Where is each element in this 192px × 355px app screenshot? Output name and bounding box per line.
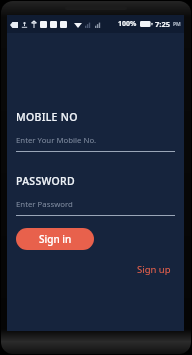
staticText: PASSWORD [16, 174, 76, 188]
button[interactable]: Enter Your Mobile No. [16, 135, 175, 152]
button[interactable]: Sign up [135, 261, 173, 278]
staticText: Sign in [39, 232, 72, 246]
button[interactable]: Sign in [16, 228, 94, 250]
staticText: 7:25 [155, 19, 170, 29]
staticText: Sign up [137, 263, 171, 276]
button[interactable]: Enter Password [16, 199, 175, 216]
staticText: MOBILE NO [16, 110, 78, 124]
staticText: 100% [118, 19, 137, 29]
staticText: Enter Password [16, 199, 73, 210]
staticText: PM [173, 21, 181, 28]
staticText: Enter Your Mobile No. [16, 135, 97, 146]
